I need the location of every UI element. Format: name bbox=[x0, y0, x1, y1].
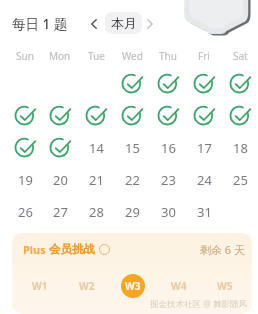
button[interactable]: 28 bbox=[82, 196, 110, 224]
staticText: 29 bbox=[125, 203, 140, 221]
button[interactable]: 27 bbox=[46, 196, 74, 224]
button[interactable]: Day 7 completed bbox=[82, 100, 110, 128]
staticText: 30 bbox=[161, 203, 176, 221]
staticText: Plus bbox=[23, 242, 49, 257]
staticText: 17 bbox=[197, 139, 212, 157]
button[interactable]: 21 bbox=[82, 164, 110, 192]
staticText: Fri bbox=[198, 49, 210, 63]
button[interactable]: Next month bbox=[142, 16, 158, 32]
button[interactable]: W5 bbox=[213, 274, 237, 298]
staticText: Sun bbox=[16, 49, 34, 63]
button[interactable]: Day 13 completed bbox=[46, 132, 74, 160]
button[interactable]: 18 bbox=[226, 132, 254, 160]
staticText: 23 bbox=[161, 171, 176, 189]
staticText: 22 bbox=[125, 171, 140, 189]
button[interactable]: W3 bbox=[121, 274, 145, 298]
button[interactable]: 30 bbox=[154, 196, 182, 224]
staticText: Mon bbox=[49, 49, 71, 63]
staticText: 19 bbox=[18, 171, 33, 189]
button[interactable]: Day 2 completed bbox=[154, 68, 182, 96]
staticText: 26 bbox=[18, 203, 33, 221]
staticText: 15 bbox=[125, 139, 140, 157]
button[interactable]: 23 bbox=[154, 164, 182, 192]
staticText: Tue bbox=[88, 49, 105, 63]
staticText: 掘金技术社区 @ 舞影随风 bbox=[150, 298, 248, 310]
button[interactable]: 17 bbox=[190, 132, 218, 160]
button[interactable]: 24 bbox=[190, 164, 218, 192]
button[interactable]: Day 12 completed bbox=[11, 132, 39, 160]
button[interactable]: 本月 bbox=[105, 12, 142, 34]
button[interactable]: 16 bbox=[154, 132, 182, 160]
button[interactable]: Day 5 completed bbox=[11, 100, 39, 128]
staticText: 24 bbox=[197, 171, 212, 189]
button[interactable]: 26 bbox=[11, 196, 39, 224]
staticText: Thu bbox=[159, 49, 177, 63]
button[interactable]: W4 bbox=[167, 274, 191, 298]
staticText: 27 bbox=[53, 203, 68, 221]
button[interactable]: 15 bbox=[118, 132, 146, 160]
button[interactable]: W1 bbox=[28, 274, 52, 298]
staticText: W3 bbox=[125, 279, 141, 293]
staticText: 21 bbox=[89, 171, 104, 189]
staticText: Sat bbox=[233, 49, 248, 63]
button[interactable]: 22 bbox=[118, 164, 146, 192]
button[interactable]: Day 4 completed bbox=[226, 68, 254, 96]
button[interactable]: Previous month bbox=[86, 16, 102, 32]
staticText: 本月 bbox=[111, 15, 137, 31]
button[interactable]: Day 3 completed bbox=[190, 68, 218, 96]
staticText: 16 bbox=[161, 139, 176, 157]
staticText: W5 bbox=[217, 279, 233, 293]
button[interactable]: 20 bbox=[46, 164, 74, 192]
button[interactable]: Day 6 completed bbox=[46, 100, 74, 128]
staticText: 会员挑战 bbox=[49, 242, 95, 256]
button[interactable]: W2 bbox=[75, 274, 99, 298]
staticText: 每日 1 题 bbox=[12, 15, 68, 33]
staticText: Wed bbox=[122, 49, 143, 63]
button[interactable]: Day 9 completed bbox=[154, 100, 182, 128]
button[interactable]: Day 10 completed bbox=[190, 100, 218, 128]
staticText: W1 bbox=[32, 279, 48, 293]
staticText: 31 bbox=[197, 203, 212, 221]
button[interactable]: 19 bbox=[11, 164, 39, 192]
button[interactable]: 14 bbox=[82, 132, 110, 160]
staticText: W4 bbox=[171, 279, 187, 293]
staticText: 14 bbox=[89, 139, 104, 157]
staticText: 20 bbox=[53, 171, 68, 189]
button[interactable]: Day 1 completed bbox=[118, 68, 146, 96]
staticText: W2 bbox=[79, 279, 95, 293]
staticText: 25 bbox=[233, 171, 248, 189]
button[interactable]: Day 8 completed bbox=[118, 100, 146, 128]
button[interactable]: Help bbox=[98, 243, 110, 255]
button[interactable]: 29 bbox=[118, 196, 146, 224]
button[interactable]: Day 11 completed bbox=[226, 100, 254, 128]
button[interactable]: 31 bbox=[190, 196, 218, 224]
button[interactable]: 25 bbox=[226, 164, 254, 192]
staticText: 18 bbox=[233, 139, 248, 157]
staticText: 28 bbox=[89, 203, 104, 221]
staticText: 剩余 6 天 bbox=[200, 242, 246, 257]
